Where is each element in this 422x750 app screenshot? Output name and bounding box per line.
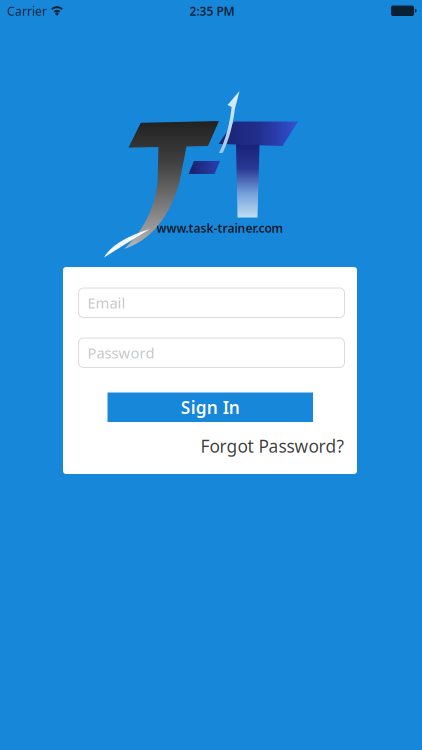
button[interactable]: Sign In xyxy=(107,392,313,422)
staticText: Email xyxy=(87,293,125,312)
staticText: www.task-trainer.com xyxy=(156,220,283,236)
staticText: Carrier xyxy=(7,3,47,19)
staticText: Password xyxy=(87,343,154,362)
staticText: Sign In xyxy=(181,396,240,419)
staticText: Forgot Password? xyxy=(200,434,344,457)
button[interactable]: Email xyxy=(78,288,344,317)
staticText: 2:35 PM xyxy=(189,3,234,19)
button[interactable]: Forgot Password? xyxy=(0,0,260,30)
button[interactable]: Password xyxy=(78,338,344,367)
